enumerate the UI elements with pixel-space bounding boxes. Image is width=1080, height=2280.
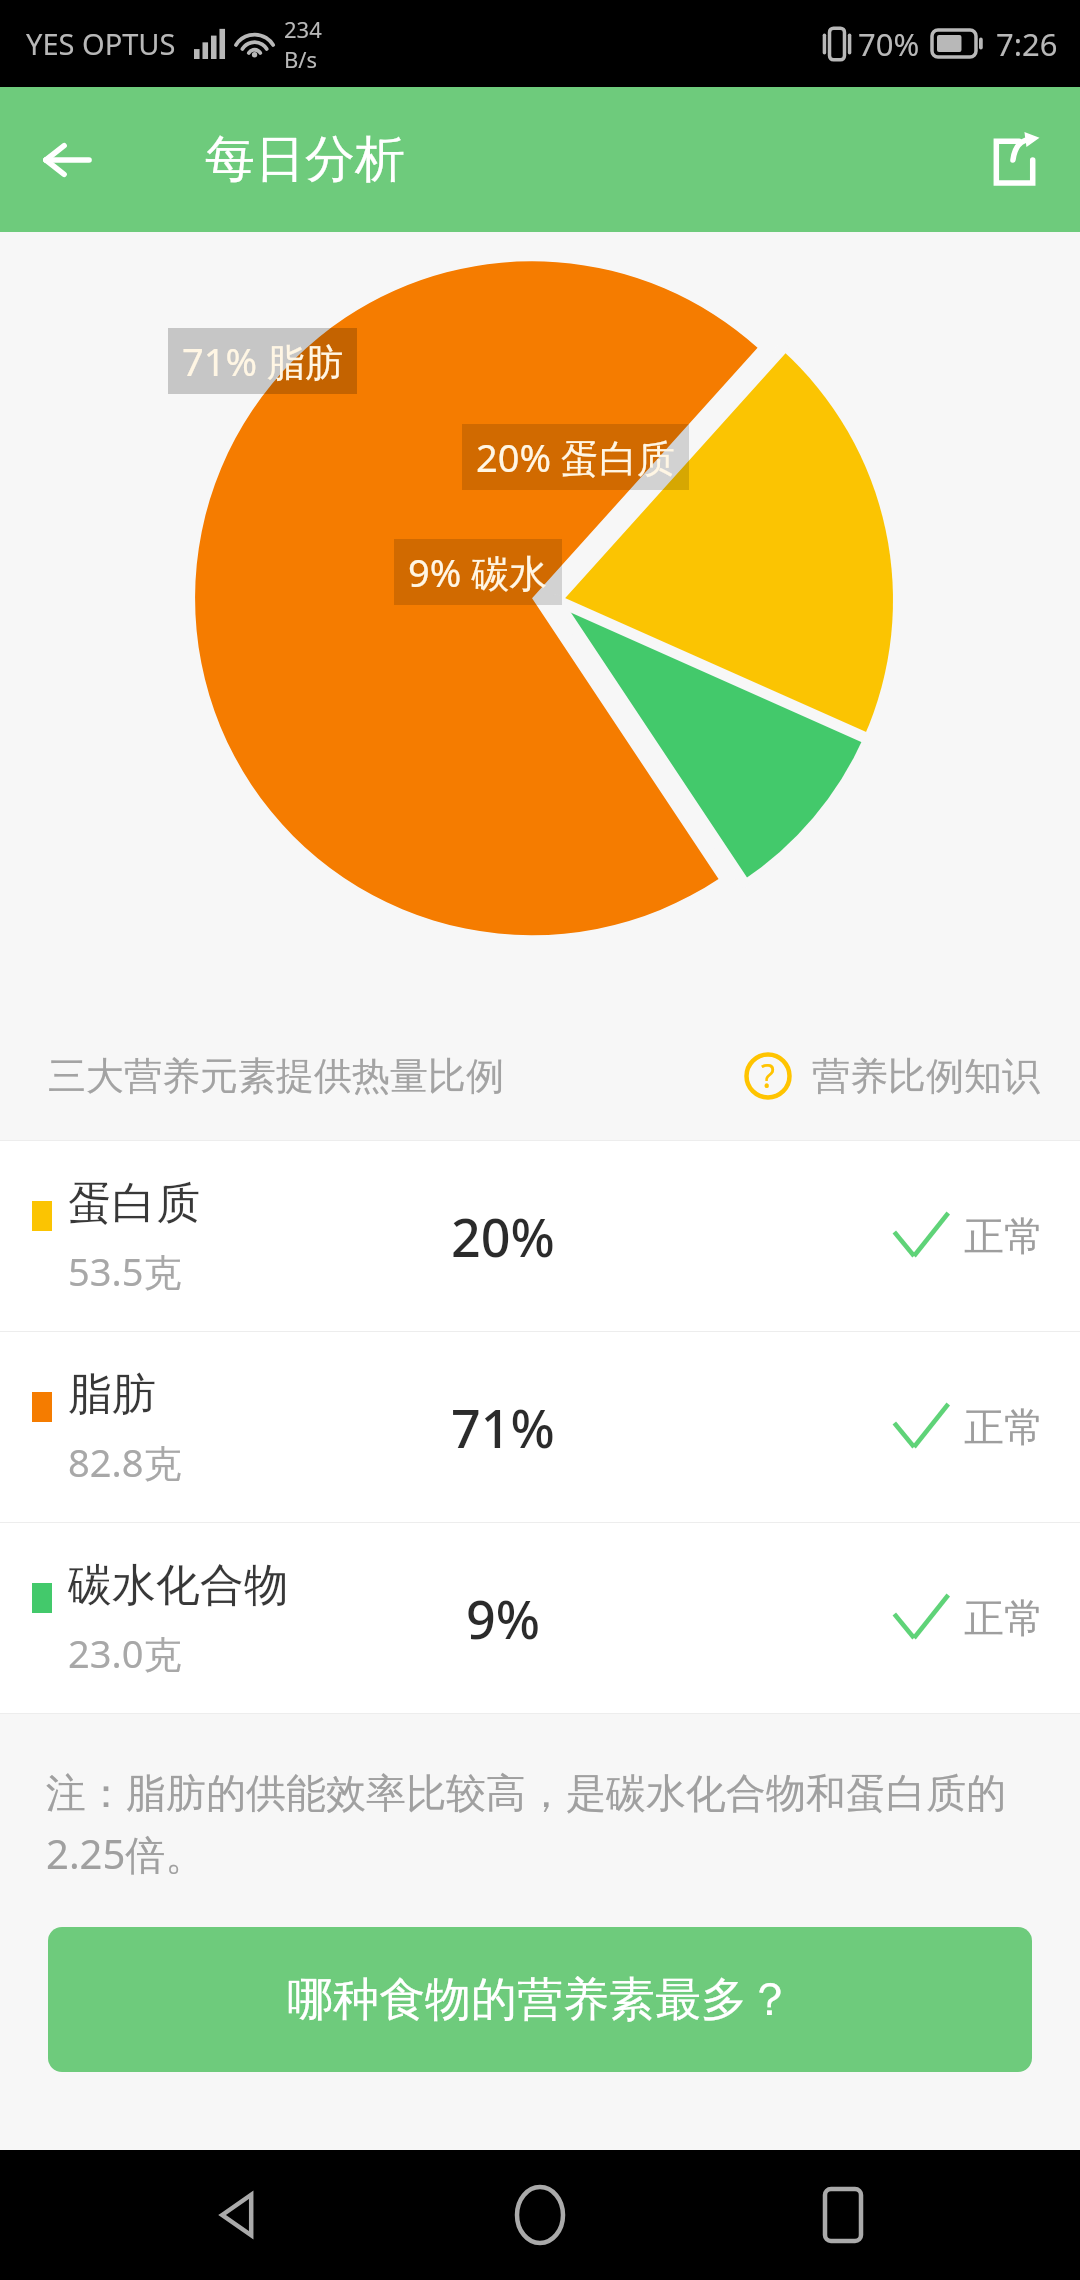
button[interactable]: 蛋白质 <box>0 1141 1080 1331</box>
staticText: 71% <box>451 1392 555 1463</box>
staticText: B/s <box>284 44 318 74</box>
button[interactable]: Home <box>475 2150 605 2280</box>
staticText: YES OPTUS <box>26 24 176 63</box>
staticText: 70% <box>858 23 920 65</box>
button[interactable]: ? <box>744 1052 1040 1100</box>
staticText: 蛋白质 <box>68 1176 200 1231</box>
staticText: 注：脂肪的供能效率比较高，是碳水化合物和蛋白质的2.25倍。 <box>46 1768 1034 1881</box>
button[interactable]: 哪种食物的营养素最多？ <box>48 1927 1032 2072</box>
staticText: 9% <box>466 1583 541 1654</box>
staticText: 7:26 <box>996 23 1058 65</box>
staticText: 82.8克 <box>68 1436 182 1488</box>
staticText: 脂肪 <box>68 1367 156 1422</box>
staticText: 234 <box>284 14 322 44</box>
button[interactable]: Back <box>28 121 106 199</box>
staticText: 正常 <box>964 1593 1044 1643</box>
staticText: ? <box>761 1054 775 1098</box>
staticText: 20% <box>451 1201 555 1272</box>
button[interactable]: Back <box>173 2150 303 2280</box>
staticText: 53.5克 <box>68 1245 182 1297</box>
staticText: 71% 脂肪 <box>182 335 343 387</box>
button[interactable]: Share <box>974 120 1054 200</box>
button[interactable]: 脂肪 <box>0 1332 1080 1522</box>
staticText: 哪种食物的营养素最多？ <box>287 1971 793 2029</box>
staticText: 三大营养元素提供热量比例 <box>48 1052 504 1100</box>
staticText: 23.0克 <box>68 1627 182 1679</box>
staticText: 正常 <box>964 1211 1044 1261</box>
staticText: 每日分析 <box>205 128 405 191</box>
staticText: 9% 碳水 <box>408 546 548 598</box>
button[interactable]: Recent apps <box>778 2150 908 2280</box>
button[interactable]: 碳水化合物 <box>0 1523 1080 1713</box>
staticText: 营养比例知识 <box>812 1052 1040 1100</box>
staticText: 20% 蛋白质 <box>476 431 675 483</box>
staticText: 正常 <box>964 1402 1044 1452</box>
staticText: 碳水化合物 <box>68 1558 288 1613</box>
